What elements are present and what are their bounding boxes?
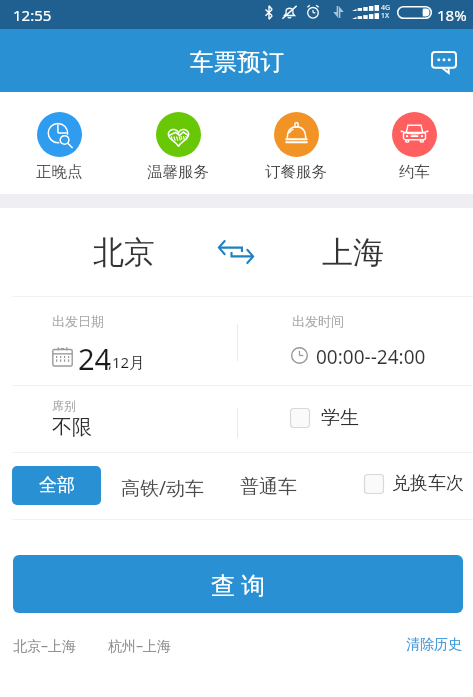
staticText: 出发时间	[292, 313, 344, 329]
staticText: ,12月	[108, 352, 145, 372]
button[interactable]: 学生	[286, 402, 363, 434]
button[interactable]: 订餐服务	[237, 92, 355, 194]
button[interactable]: 北京	[0, 208, 187, 296]
button[interactable]: 正晚点	[0, 92, 119, 194]
button[interactable]: 约车	[355, 92, 473, 194]
button[interactable]: 清除历史	[400, 631, 468, 659]
button[interactable]: 上海	[287, 208, 473, 296]
staticText: 车票预订	[190, 47, 284, 77]
staticText: 兑换车次	[392, 472, 464, 495]
staticText: 上海	[322, 233, 384, 272]
staticText: 清除历史	[406, 636, 462, 654]
staticText: 24	[78, 339, 112, 378]
button[interactable]: 温馨服务	[119, 92, 237, 194]
staticText: 席别	[52, 398, 76, 413]
staticText: 查 询	[211, 568, 266, 601]
staticText: 北京	[93, 233, 155, 272]
staticText: 全部	[39, 474, 75, 497]
staticText: 普通车	[240, 475, 297, 499]
staticText: 温馨服务	[147, 162, 209, 182]
staticText: 18%	[437, 5, 467, 25]
button[interactable]: 普通车	[234, 469, 303, 505]
staticText: 1X	[381, 11, 390, 21]
button[interactable]: 兑换车次	[360, 468, 468, 499]
staticText: 学生	[321, 406, 359, 430]
staticText: 约车	[399, 162, 430, 182]
staticText: 订餐服务	[265, 162, 327, 182]
button[interactable]: 出发时间	[238, 297, 473, 385]
staticText: 出发日期	[52, 313, 104, 329]
staticText: 00:00--24:00	[316, 344, 426, 370]
button[interactable]: Messages	[421, 38, 467, 84]
staticText: 高铁/动车	[121, 475, 205, 501]
staticText: 正晚点	[36, 162, 83, 182]
button[interactable]: 杭州–上海	[102, 631, 177, 660]
staticText: 北京–上海	[13, 636, 76, 655]
staticText: 不限	[52, 415, 92, 440]
staticText: 杭州–上海	[108, 636, 171, 655]
staticText: 12:55	[13, 5, 52, 25]
staticText: 4G	[381, 3, 391, 13]
button[interactable]: 席别	[0, 386, 237, 452]
button[interactable]: 北京–上海	[7, 631, 82, 660]
button[interactable]: 全部	[12, 466, 101, 505]
button[interactable]: 高铁/动车	[115, 469, 211, 507]
button[interactable]: Swap cities	[187, 208, 287, 296]
button[interactable]: 出发日期	[0, 297, 237, 385]
button[interactable]: 查 询	[13, 555, 463, 613]
